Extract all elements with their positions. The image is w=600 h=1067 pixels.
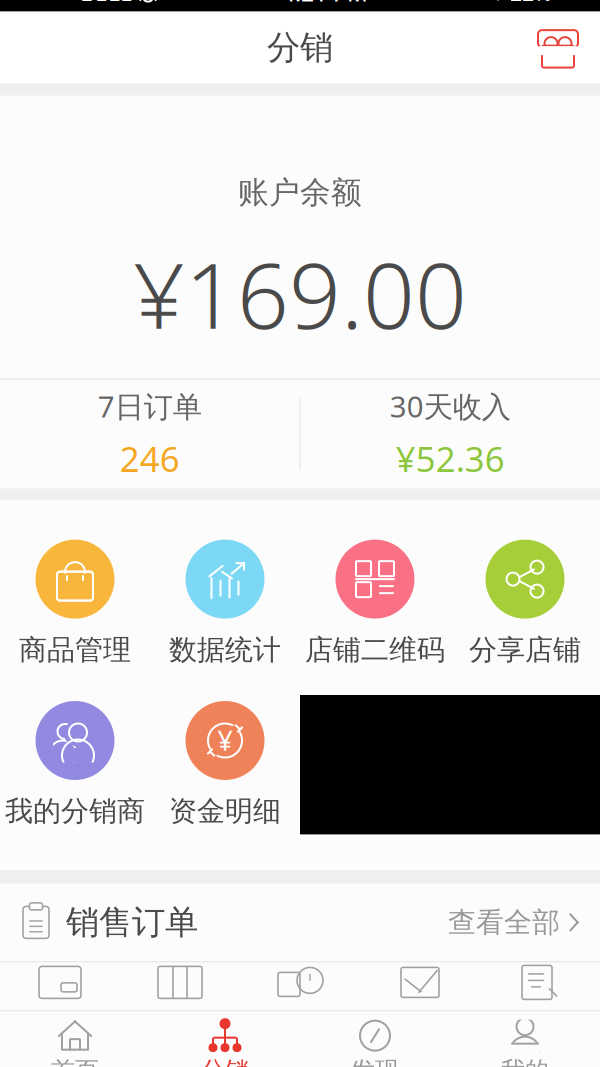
button[interactable]: 数据统计: [150, 534, 300, 673]
staticText: ¥52.36: [396, 436, 505, 482]
button[interactable]: 销售订单: [0, 883, 600, 961]
staticText: 分享店铺: [469, 633, 581, 667]
button[interactable]: 我的店铺: [524, 20, 592, 76]
button[interactable]: 订单状态: [0, 962, 120, 1010]
button[interactable]: 订单状态: [240, 962, 360, 1010]
staticText: 22%: [510, 0, 552, 7]
button[interactable]: 分销: [150, 1011, 300, 1067]
staticText: 销售订单: [66, 902, 198, 943]
staticText: 账户余额: [238, 174, 362, 211]
button[interactable]: 商品管理: [0, 534, 150, 673]
staticText: 我的: [501, 1056, 549, 1067]
staticText: 查看全部: [448, 905, 560, 940]
staticText: 发现: [351, 1056, 399, 1067]
staticText: ¥169.00: [133, 233, 467, 354]
button[interactable]: 订单状态: [480, 962, 600, 1010]
button[interactable]: 订单状态: [360, 962, 480, 1010]
button[interactable]: 我的分销商: [0, 695, 150, 834]
staticText: 数据统计: [169, 633, 281, 667]
button[interactable]: 店铺二维码: [300, 534, 450, 673]
button[interactable]: 分享店铺: [450, 534, 600, 673]
staticText: 7日订单: [98, 387, 202, 426]
staticText: 资金明细: [169, 794, 281, 828]
button[interactable]: 首页: [0, 1011, 150, 1067]
staticText: 分销: [201, 1056, 249, 1067]
button[interactable]: ¥: [150, 695, 300, 834]
staticText: 首页: [51, 1056, 99, 1067]
staticText: 我的分销商: [5, 794, 145, 828]
button[interactable]: 我的: [450, 1011, 600, 1067]
staticText: 30天收入: [390, 387, 511, 426]
staticText: BELL: [80, 0, 132, 8]
staticText: ¥: [217, 723, 232, 758]
staticText: 246: [120, 436, 180, 482]
button[interactable]: 订单状态: [120, 962, 240, 1010]
button[interactable]: 发现: [300, 1011, 450, 1067]
staticText: 4:21 PM: [282, 0, 368, 8]
staticText: 商品管理: [19, 633, 131, 667]
staticText: 分销: [267, 27, 333, 68]
staticText: 店铺二维码: [305, 633, 445, 667]
